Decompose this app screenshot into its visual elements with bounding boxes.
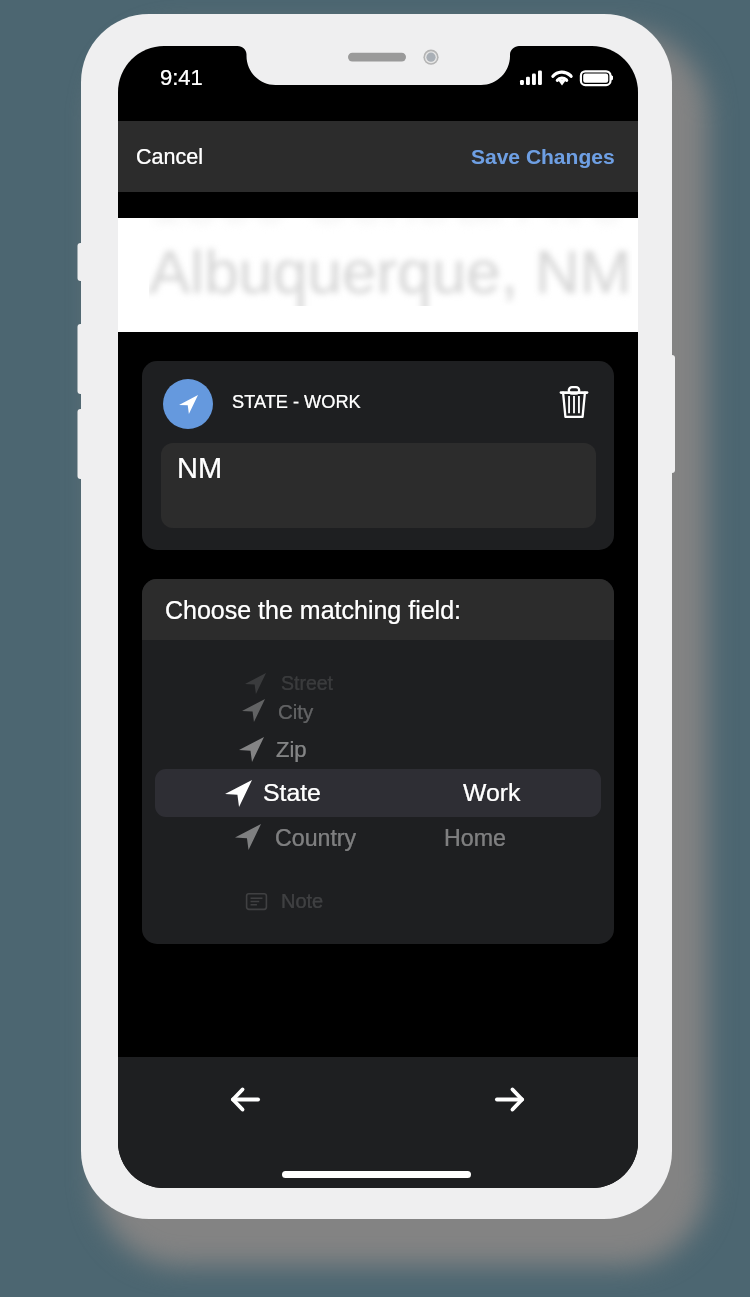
staticText: STATE - WORK (232, 392, 361, 412)
staticText: State (263, 779, 321, 807)
staticText: Note (281, 890, 324, 912)
staticText: Cancel (136, 145, 203, 169)
staticText: 9:41 (160, 65, 203, 90)
staticText: Zip (276, 737, 307, 762)
button[interactable]: Save Changes (460, 129, 615, 184)
button[interactable]: Cancel (136, 129, 206, 184)
staticText: Home (444, 825, 506, 851)
button[interactable]: Previous (215, 1069, 275, 1129)
staticText: Street (281, 672, 334, 694)
staticText: Save Changes (471, 145, 615, 168)
button[interactable]: Delete (556, 382, 592, 422)
staticText: NM (177, 452, 223, 484)
staticText: City (278, 700, 314, 723)
staticText: Country (275, 825, 357, 851)
staticText: Choose the matching field: (165, 596, 462, 624)
staticText: Albuquerque, NM (149, 237, 632, 306)
staticText: Work (463, 779, 521, 807)
button[interactable]: Next (479, 1069, 539, 1129)
